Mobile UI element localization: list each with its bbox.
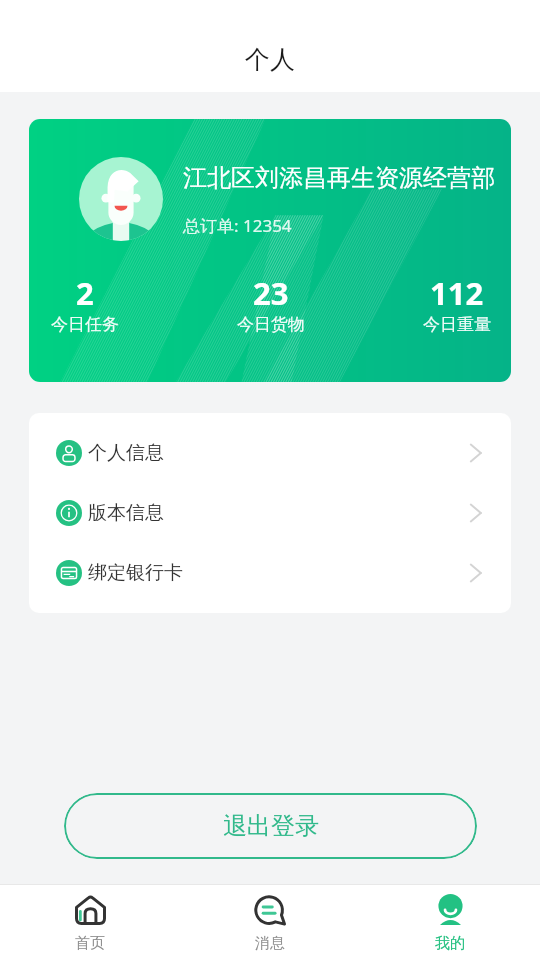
staticText: 23 bbox=[253, 272, 289, 314]
staticText: 版本信息 bbox=[88, 501, 164, 525]
button[interactable]: 首页 bbox=[0, 885, 180, 960]
staticText: 退出登录 bbox=[223, 811, 319, 841]
button[interactable]: 版本信息 bbox=[29, 483, 511, 543]
staticText: 消息 bbox=[255, 934, 285, 953]
staticText: 总订单: 12354 bbox=[183, 214, 292, 237]
staticText: 今日任务 bbox=[51, 314, 119, 335]
staticText: 江北区刘添昌再生资源经营部 bbox=[183, 163, 495, 193]
staticText: 我的 bbox=[435, 934, 465, 953]
staticText: 今日货物 bbox=[237, 314, 305, 335]
staticText: 2 bbox=[76, 272, 94, 314]
staticText: 首页 bbox=[75, 934, 105, 953]
staticText: 个人 bbox=[245, 44, 295, 75]
button[interactable]: 绑定银行卡 bbox=[29, 543, 511, 603]
staticText: 112 bbox=[430, 272, 484, 314]
button[interactable]: 我的 bbox=[360, 885, 540, 960]
button[interactable]: 退出登录 bbox=[64, 793, 477, 859]
button[interactable]: 消息 bbox=[180, 885, 360, 960]
staticText: 个人信息 bbox=[88, 441, 164, 465]
staticText: 绑定银行卡 bbox=[88, 561, 183, 585]
staticText: 今日重量 bbox=[423, 314, 491, 335]
button[interactable]: 个人信息 bbox=[29, 423, 511, 483]
